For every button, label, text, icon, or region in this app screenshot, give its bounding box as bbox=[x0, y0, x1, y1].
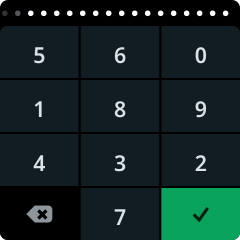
staticText: 3 bbox=[114, 149, 126, 177]
staticText: 1 bbox=[33, 95, 45, 123]
button[interactable]: Delete bbox=[0, 188, 79, 240]
staticText: 7 bbox=[114, 203, 126, 231]
button[interactable]: Confirm bbox=[161, 188, 240, 240]
button[interactable]: 8 bbox=[81, 80, 159, 132]
staticText: 4 bbox=[33, 149, 45, 177]
button[interactable]: 2 bbox=[161, 134, 240, 186]
button[interactable]: 3 bbox=[81, 134, 159, 186]
button[interactable]: 5 bbox=[0, 26, 79, 78]
button[interactable]: 0 bbox=[161, 26, 240, 78]
staticText: 0 bbox=[195, 41, 207, 69]
button[interactable]: 9 bbox=[161, 80, 240, 132]
button[interactable]: 6 bbox=[81, 26, 159, 78]
button[interactable]: 7 bbox=[81, 188, 159, 240]
button[interactable]: 4 bbox=[0, 134, 79, 186]
staticText: 8 bbox=[114, 95, 126, 123]
staticText: 6 bbox=[114, 41, 126, 69]
staticText: 9 bbox=[195, 95, 207, 123]
staticText: 2 bbox=[195, 149, 207, 177]
button[interactable]: 1 bbox=[0, 80, 79, 132]
staticText: 5 bbox=[33, 41, 45, 69]
